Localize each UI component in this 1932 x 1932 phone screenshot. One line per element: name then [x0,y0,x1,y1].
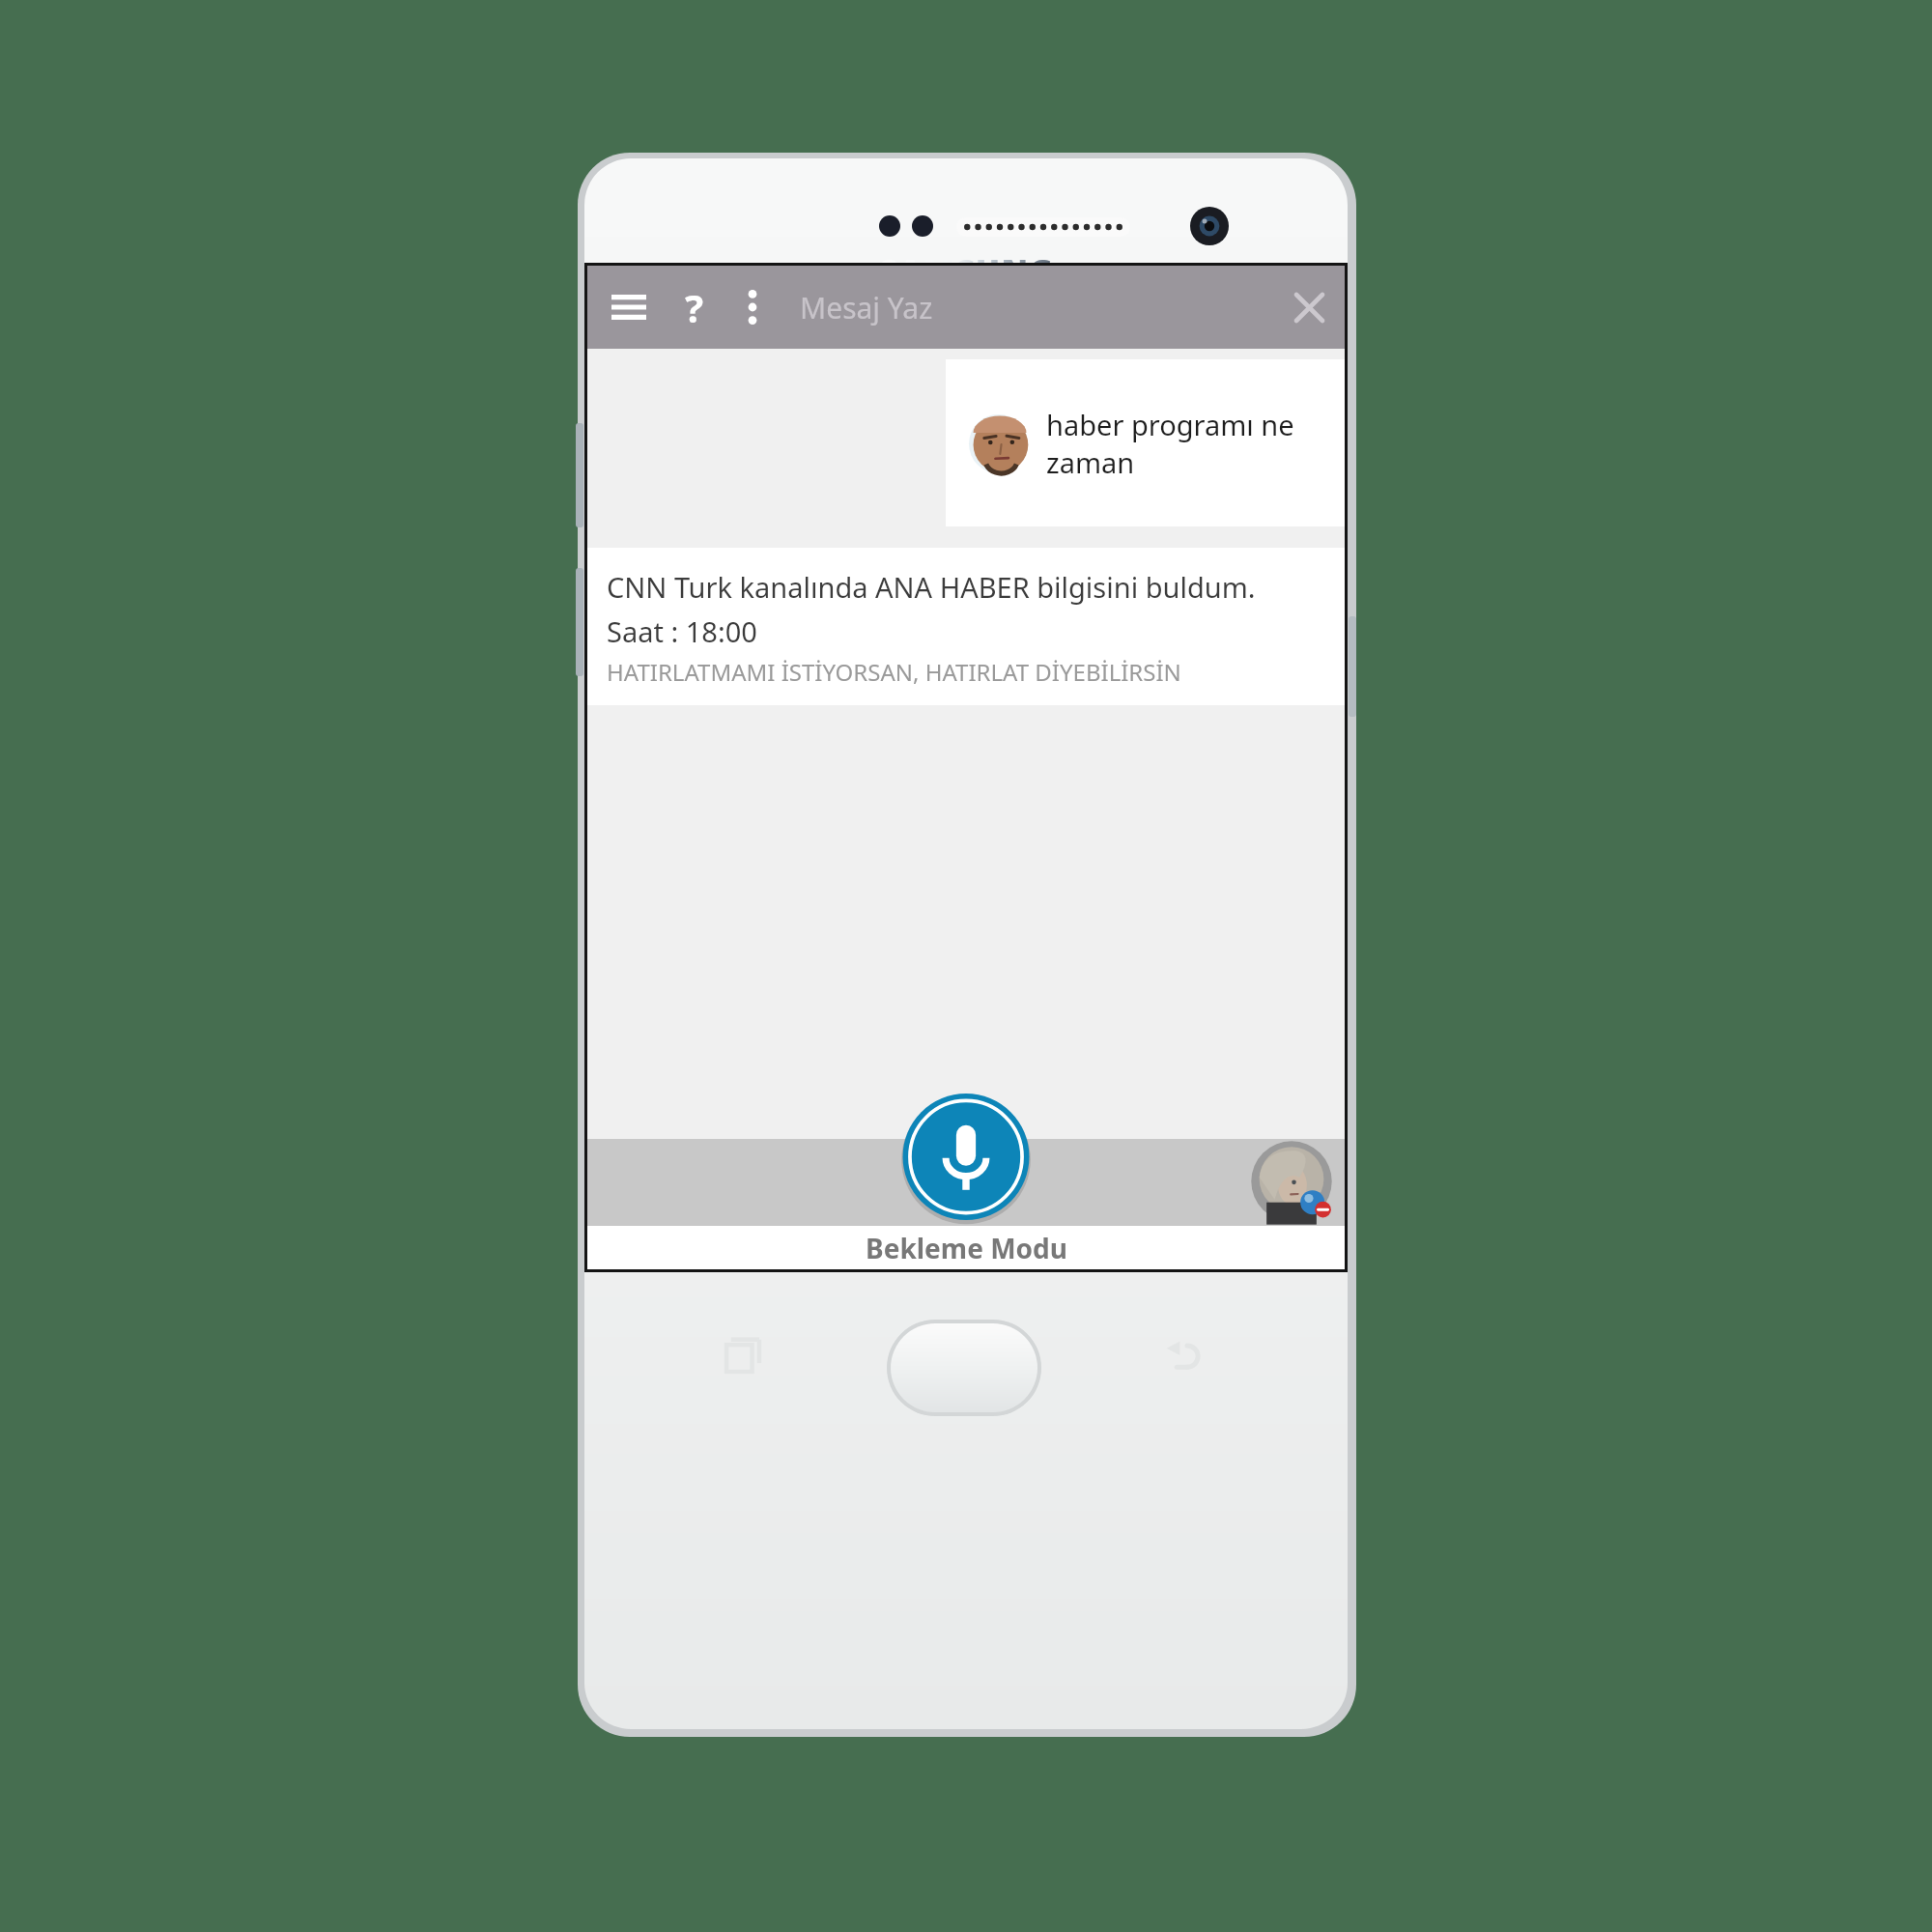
button[interactable]: haber programı ne zaman [946,359,1345,526]
button[interactable]: CNN Turk kanalında ANA HABER bilgisini b… [587,548,1345,705]
button[interactable]: Mesaj Yaz [800,288,933,327]
button[interactable]: Close [1279,277,1339,337]
staticText: Bekleme Modu [866,1230,1067,1266]
button[interactable]: Home [887,1320,1041,1416]
button[interactable]: Bekleme Modu [587,1226,1345,1269]
staticText: ? [685,281,704,333]
button[interactable]: Menu [601,279,657,335]
button[interactable]: Recents [721,1333,765,1378]
button[interactable]: Help [668,281,721,333]
staticText: HATIRLATMAMI İSTİYORSAN, HATIRLAT DİYEBİ… [607,656,1181,688]
button[interactable]: Voice input [883,1092,1049,1222]
button[interactable]: More options [728,283,777,331]
button[interactable]: Back [1161,1333,1206,1378]
staticText: haber programı ne zaman [1046,406,1345,481]
button[interactable]: Assistant avatar [1250,1140,1333,1223]
staticText: CNN Turk kanalında ANA HABER bilgisini b… [607,568,1331,651]
staticText: SAMSUNG [879,249,1055,293]
